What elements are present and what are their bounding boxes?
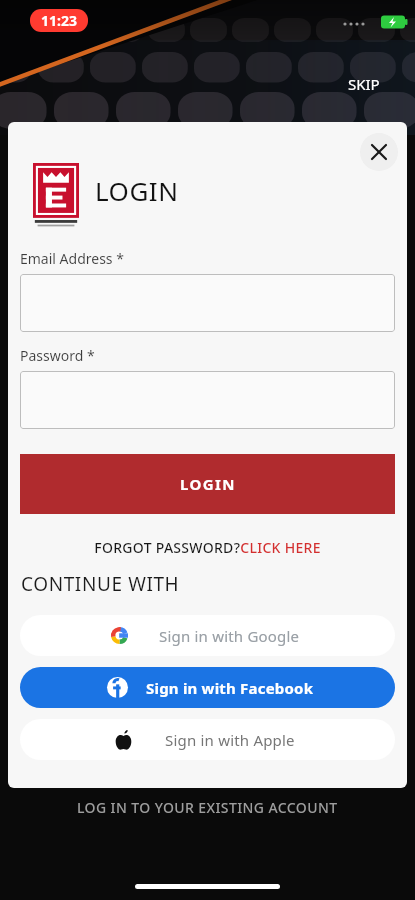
- button[interactable]: Sign in with Facebook: [20, 667, 395, 708]
- staticText: 11:23: [41, 11, 77, 30]
- staticText: FORGOT PASSWORD?CLICK HERE: [94, 538, 321, 557]
- staticText: SKIP: [348, 74, 380, 94]
- staticText: CONTINUE WITH: [21, 571, 180, 597]
- button[interactable]: Sign in with Google: [20, 615, 395, 656]
- button[interactable]: [20, 274, 395, 332]
- staticText: Email Address *: [20, 249, 124, 268]
- button[interactable]: [20, 371, 395, 429]
- staticText: Sign in with Apple: [165, 730, 295, 750]
- staticText: Password *: [20, 346, 95, 365]
- staticText: Sign in with Facebook: [146, 678, 314, 698]
- staticText: LOGIN: [95, 173, 179, 208]
- button[interactable]: Close: [360, 133, 398, 171]
- button[interactable]: SKIP: [340, 70, 388, 98]
- staticText: LOG IN TO YOUR EXISTING ACCOUNT: [77, 798, 338, 817]
- button[interactable]: Sign in with Apple: [20, 719, 395, 760]
- staticText: Sign in with Google: [159, 626, 300, 646]
- button[interactable]: FORGOT PASSWORD?CLICK HERE: [8, 538, 407, 557]
- staticText: LOGIN: [180, 474, 236, 494]
- button[interactable]: LOGIN: [20, 454, 395, 514]
